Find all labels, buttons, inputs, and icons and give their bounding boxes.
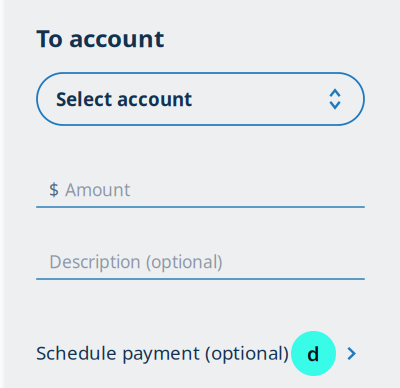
staticText: Schedule payment (optional) (36, 340, 289, 365)
staticText: Description (optional) (49, 250, 222, 273)
staticText: $ (49, 178, 59, 201)
staticText: d (307, 340, 320, 367)
button[interactable]: $ (36, 176, 365, 208)
button[interactable]: Description (optional) (36, 248, 365, 280)
button[interactable]: Select account (36, 73, 365, 125)
staticText: To account (36, 22, 164, 54)
staticText: Select account (56, 87, 192, 111)
button[interactable]: Schedule payment (optional) (36, 331, 365, 376)
staticText: Amount (65, 178, 130, 201)
